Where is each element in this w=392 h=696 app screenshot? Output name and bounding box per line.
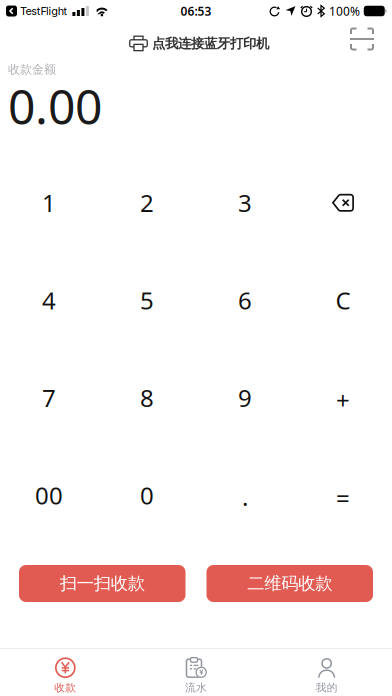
button[interactable]: 9 (196, 349, 294, 446)
staticText: 3 (238, 187, 252, 219)
staticText: 二维码收款 (247, 573, 332, 594)
staticText: 2 (140, 187, 154, 219)
staticText: 点我连接蓝牙打印机 (152, 35, 269, 52)
button[interactable]: 2 (98, 154, 196, 251)
staticText: 06:53 (180, 3, 211, 19)
staticText: 0.00 (8, 74, 102, 138)
button[interactable]: 1 (0, 154, 98, 251)
button[interactable]: . (196, 446, 294, 544)
staticText: . (242, 481, 248, 513)
button[interactable]: 我的 (261, 649, 392, 694)
staticText: + (336, 384, 350, 416)
button[interactable]: 点我连接蓝牙打印机 (126, 31, 266, 47)
staticText: 扫一扫收款 (60, 573, 145, 594)
button[interactable]: 6 (196, 251, 294, 349)
button[interactable]: 收款 (0, 649, 131, 694)
staticText: 4 (42, 284, 56, 316)
staticText: 1 (42, 187, 56, 219)
staticText: 00 (35, 479, 63, 511)
staticText: 5 (140, 284, 154, 316)
staticText: 6 (238, 284, 252, 316)
button[interactable]: 0 (98, 446, 196, 544)
staticText: = (336, 482, 350, 514)
button[interactable]: 二维码收款 (206, 565, 373, 602)
button[interactable]: = (294, 446, 392, 544)
button[interactable]: 00 (0, 446, 98, 544)
button[interactable]: 5 (98, 251, 196, 349)
button[interactable]: 扫码 (350, 27, 374, 50)
staticText: 收款 (54, 681, 76, 694)
staticText: 100% (329, 3, 360, 19)
staticText: 我的 (316, 681, 338, 694)
button[interactable]: 删除 (294, 154, 392, 251)
staticText: 流水 (185, 681, 207, 694)
button[interactable]: 流水 (131, 649, 261, 694)
staticText: TestFlight (20, 4, 67, 18)
staticText: 收款金额 (8, 62, 56, 77)
staticText: C (335, 284, 350, 316)
button[interactable]: 3 (196, 154, 294, 251)
staticText: 0 (140, 479, 154, 511)
button[interactable]: 4 (0, 251, 98, 349)
staticText: 8 (140, 382, 154, 414)
button[interactable]: 7 (0, 349, 98, 446)
button[interactable]: 8 (98, 349, 196, 446)
button[interactable]: + (294, 349, 392, 446)
button[interactable]: 扫一扫收款 (19, 565, 185, 602)
button[interactable]: C (294, 251, 392, 349)
staticText: 9 (238, 382, 252, 414)
staticText: 7 (42, 382, 56, 414)
